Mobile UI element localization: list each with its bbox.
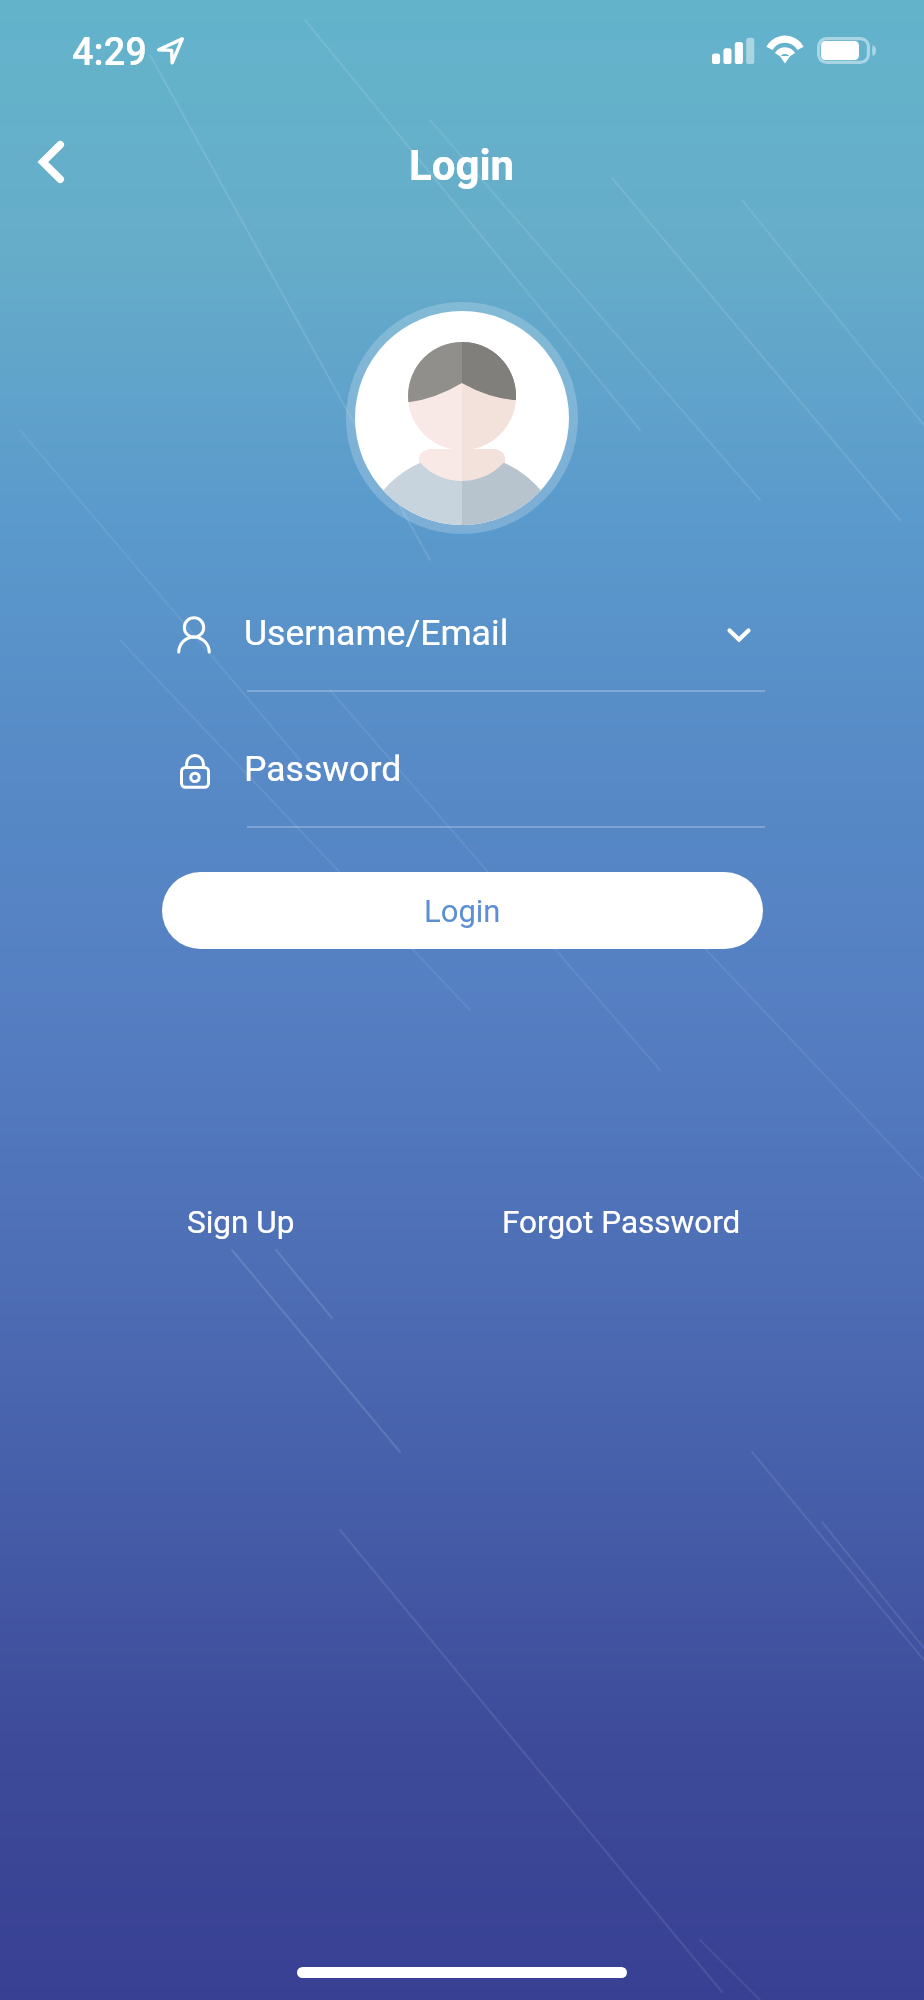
staticText: Username/Email [244,612,509,654]
staticText: Login [424,893,501,929]
button[interactable]: Back [13,124,89,200]
button[interactable]: Forgot Password [502,1204,741,1241]
button[interactable]: Login [162,872,763,949]
staticText: 4:29 [72,30,147,75]
staticText: Forgot Password [502,1204,741,1241]
staticText: Password [244,748,402,790]
button[interactable]: Sign Up [187,1204,295,1241]
button[interactable]: Password [170,736,765,828]
button[interactable]: Username/Email [170,600,765,692]
button[interactable]: Show saved accounts [715,611,763,659]
staticText: Login [409,141,515,190]
staticText: Sign Up [187,1204,295,1241]
